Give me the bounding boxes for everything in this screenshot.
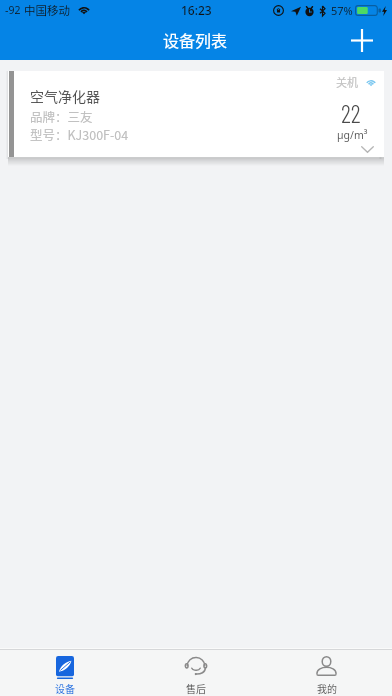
staticText: 售后 [186,681,206,695]
staticText: 型号：KJ300F-04 [30,125,129,143]
staticText: 设备列表 [163,28,228,51]
staticText: 22 [341,98,361,128]
staticText: 空气净化器 [30,86,100,106]
button[interactable]: Add device [339,20,384,60]
staticText: 16:23 [181,2,212,18]
staticText: 品牌：三友 [30,107,93,125]
staticText: 关机 [336,74,358,90]
staticText: 设备 [55,681,75,695]
staticText: 57% [331,3,353,18]
button[interactable]: Profile tab [261,650,392,696]
staticText: -92 [5,3,24,17]
staticText: µg/m³ [337,128,368,142]
button[interactable]: 空气净化器 [8,71,384,157]
staticText: 中国移动 [24,2,70,19]
button[interactable]: Devices tab [0,650,130,696]
button[interactable]: Support tab [130,650,261,696]
staticText: 我的 [317,681,337,695]
